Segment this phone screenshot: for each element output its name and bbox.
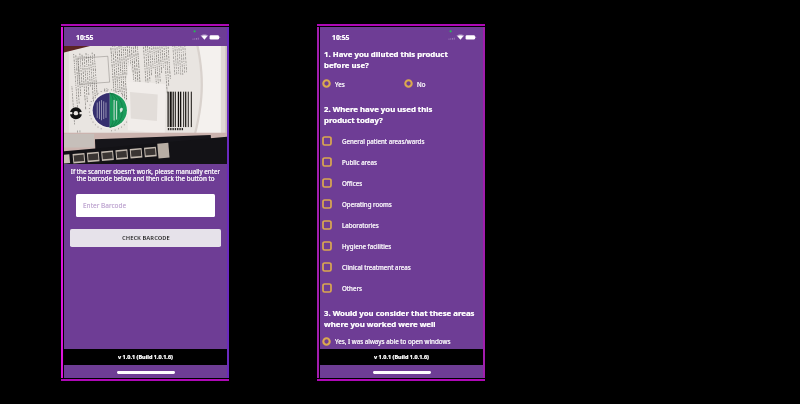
staticText: Hygiene facilities — [342, 242, 392, 250]
button[interactable]: Enter Barcode — [76, 194, 215, 217]
button[interactable]: Yes — [322, 77, 404, 90]
staticText: No — [417, 80, 426, 88]
button[interactable]: Others — [322, 277, 480, 298]
staticText: v 1.0.1 (Build 1.0.1.6) — [118, 353, 173, 360]
staticText: Public areas — [342, 158, 377, 166]
button[interactable]: Clinical treatment areas — [322, 256, 480, 277]
staticText: Enter Barcode — [83, 201, 127, 210]
staticText: General patient areas/wards — [342, 137, 425, 145]
button[interactable]: General patient areas/wards — [322, 130, 480, 151]
button[interactable]: Yes, I was always able to open windows — [322, 335, 451, 348]
staticText: Operating rooms — [342, 200, 392, 208]
staticText: If the scanner doesn't work, please manu… — [64, 167, 227, 183]
staticText: Offices — [342, 179, 363, 187]
staticText: v 1.0.1 (Build 1.0.1.6) — [374, 353, 429, 360]
staticText: Yes, I was always able to open windows — [335, 337, 451, 346]
button[interactable]: Hygiene facilities — [322, 235, 480, 256]
staticText: 10:55 — [76, 33, 94, 42]
button[interactable]: Laboratories — [322, 214, 480, 235]
button[interactable]: No — [404, 77, 426, 90]
staticText: 3. Would you consider that these areas w… — [324, 308, 480, 329]
button[interactable]: Public areas — [322, 151, 480, 172]
button[interactable]: Operating rooms — [322, 193, 480, 214]
staticText: 1. Have you diluted this product before … — [324, 49, 480, 70]
button[interactable]: Offices — [322, 172, 480, 193]
staticText: Others — [342, 284, 362, 292]
button[interactable]: CHECK BARCODE — [70, 229, 221, 247]
staticText: CHECK BARCODE — [122, 234, 170, 242]
staticText: Yes — [335, 80, 345, 88]
staticText: 2. Where have you used this product toda… — [324, 104, 480, 125]
staticText: Laboratories — [342, 221, 379, 229]
staticText: Clinical treatment areas — [342, 263, 411, 271]
staticText: 10:55 — [332, 33, 350, 42]
